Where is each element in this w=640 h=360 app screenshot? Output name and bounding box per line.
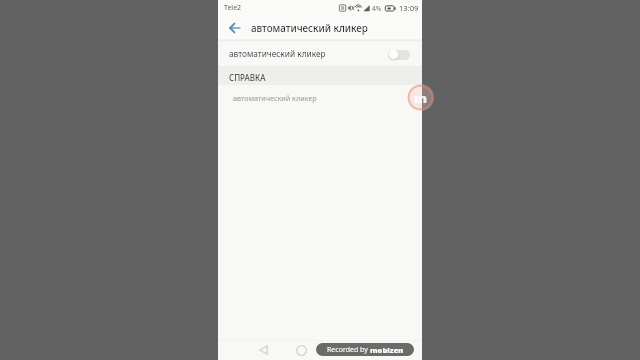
- staticText: 4%: [372, 4, 382, 13]
- button[interactable]: Home: [290, 340, 312, 360]
- button[interactable]: автоматический кликер: [218, 42, 422, 66]
- staticText: m: [414, 89, 428, 107]
- staticText: 13:09: [399, 3, 419, 13]
- staticText: СПРАВКА: [229, 72, 266, 83]
- staticText: Tele2: [224, 3, 242, 13]
- staticText: mobizen: [370, 345, 404, 355]
- button[interactable]: Back: [252, 340, 274, 360]
- staticText: автоматический кликер: [251, 22, 368, 35]
- staticText: Recorded by: [327, 345, 370, 355]
- staticText: автоматический кликер: [233, 93, 317, 103]
- staticText: автоматический кликер: [229, 48, 326, 59]
- button[interactable]: Recents: [368, 340, 390, 360]
- button[interactable]: автоматический кликер: [218, 85, 422, 110]
- button[interactable]: Back: [222, 16, 248, 40]
